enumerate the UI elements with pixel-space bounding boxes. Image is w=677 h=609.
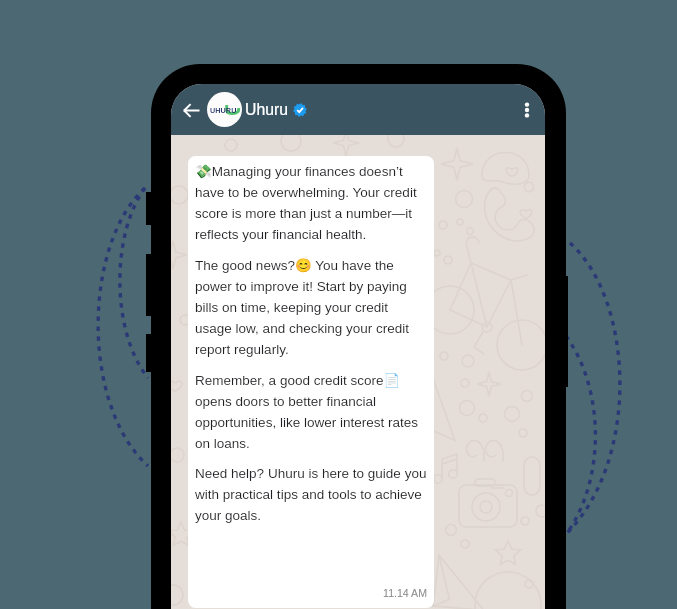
button[interactable]: More options xyxy=(509,92,545,128)
staticText: The good news?😊 You have the power to im… xyxy=(195,257,427,357)
staticText: Need help? Uhuru is here to guide you wi… xyxy=(195,466,427,523)
staticText: Uhuru xyxy=(245,101,289,119)
button[interactable]: UHURU xyxy=(207,84,307,135)
button[interactable]: Back xyxy=(176,95,206,125)
staticText: UHURU xyxy=(210,106,237,114)
staticText: 11.14 AM xyxy=(195,587,427,599)
staticText: Remember, a good credit score📄 opens doo… xyxy=(195,372,427,451)
button[interactable]: 💸Managing your finances doesn’t have to … xyxy=(188,156,434,608)
staticText: 💸Managing your finances doesn’t have to … xyxy=(195,163,427,242)
other: Verified business account xyxy=(293,103,307,117)
